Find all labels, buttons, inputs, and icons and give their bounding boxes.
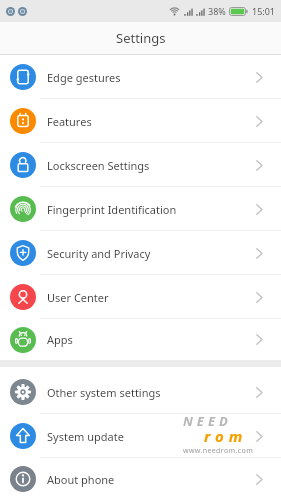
button[interactable]: Other system settings xyxy=(0,370,281,414)
staticText: About phone xyxy=(47,472,115,487)
staticText: Settings xyxy=(116,29,166,47)
staticText: Fingerprint Identification xyxy=(47,202,177,217)
button[interactable]: Lockscreen Settings xyxy=(0,143,281,187)
staticText: 38% xyxy=(208,5,226,17)
staticText: Lockscreen Settings xyxy=(47,158,150,173)
button[interactable]: System update xyxy=(0,414,281,458)
staticText: Edge gestures xyxy=(47,70,121,85)
staticText: NEED xyxy=(183,412,232,430)
staticText: Security and Privacy xyxy=(47,246,151,261)
button[interactable]: Security and Privacy xyxy=(0,231,281,275)
button[interactable]: User Center xyxy=(0,275,281,319)
staticText: Features xyxy=(47,114,92,129)
button[interactable]: Edge gestures xyxy=(0,55,281,99)
button[interactable]: Fingerprint Identification xyxy=(0,187,281,231)
staticText: Other system settings xyxy=(47,385,161,400)
staticText: User Center xyxy=(47,290,109,305)
staticText: 15:01 xyxy=(252,5,276,17)
button[interactable]: About phone xyxy=(0,458,281,500)
button[interactable]: Features xyxy=(0,99,281,143)
button[interactable]: Apps xyxy=(0,319,281,360)
staticText: rom xyxy=(204,426,248,446)
staticText: System update xyxy=(47,429,124,444)
staticText: Apps xyxy=(47,332,73,347)
staticText: www.needrom.com xyxy=(183,446,254,456)
